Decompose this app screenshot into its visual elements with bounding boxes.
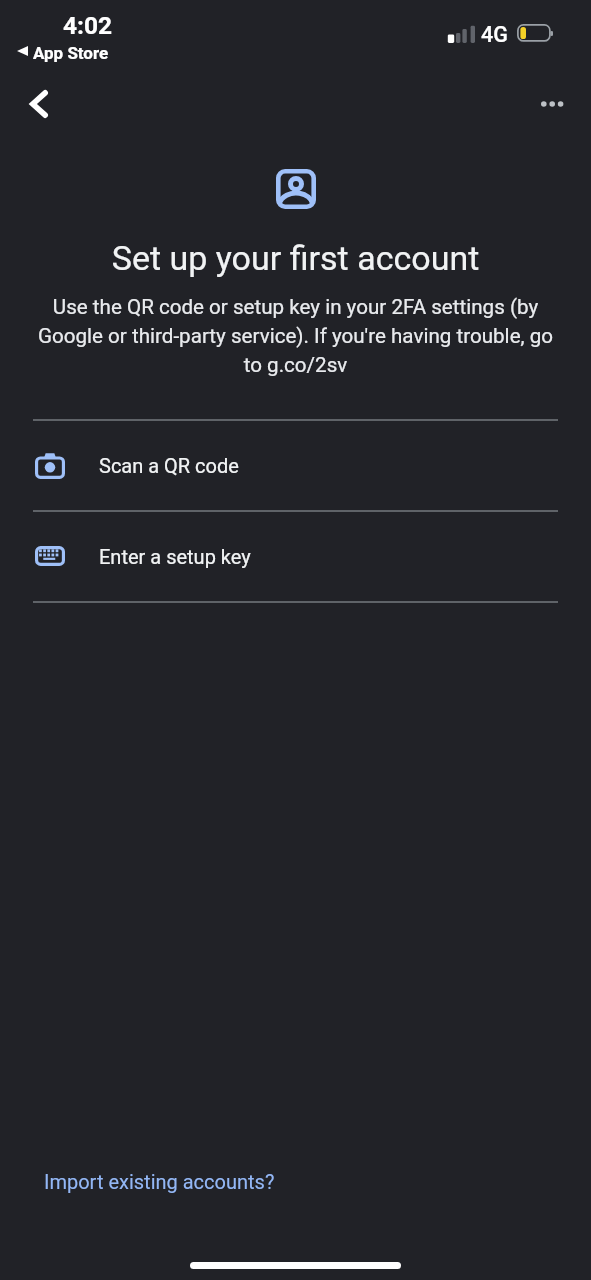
staticText: App Store xyxy=(33,43,109,63)
button[interactable]: More options xyxy=(529,88,576,120)
staticText: Set up your first account xyxy=(0,238,591,278)
staticText: Scan a QR code xyxy=(99,454,239,477)
staticText: Import existing accounts? xyxy=(44,1170,275,1193)
staticText: Use the QR code or setup key in your 2FA… xyxy=(28,295,563,377)
staticText: 4:02 xyxy=(63,11,113,40)
staticText: 4G xyxy=(481,22,508,47)
button[interactable]: Scan a QR code xyxy=(0,421,591,510)
staticText: Enter a setup key xyxy=(99,545,251,568)
button[interactable]: Import existing accounts? xyxy=(36,1162,283,1201)
button[interactable]: Enter a setup key xyxy=(0,512,591,601)
button[interactable]: Back xyxy=(17,82,61,126)
